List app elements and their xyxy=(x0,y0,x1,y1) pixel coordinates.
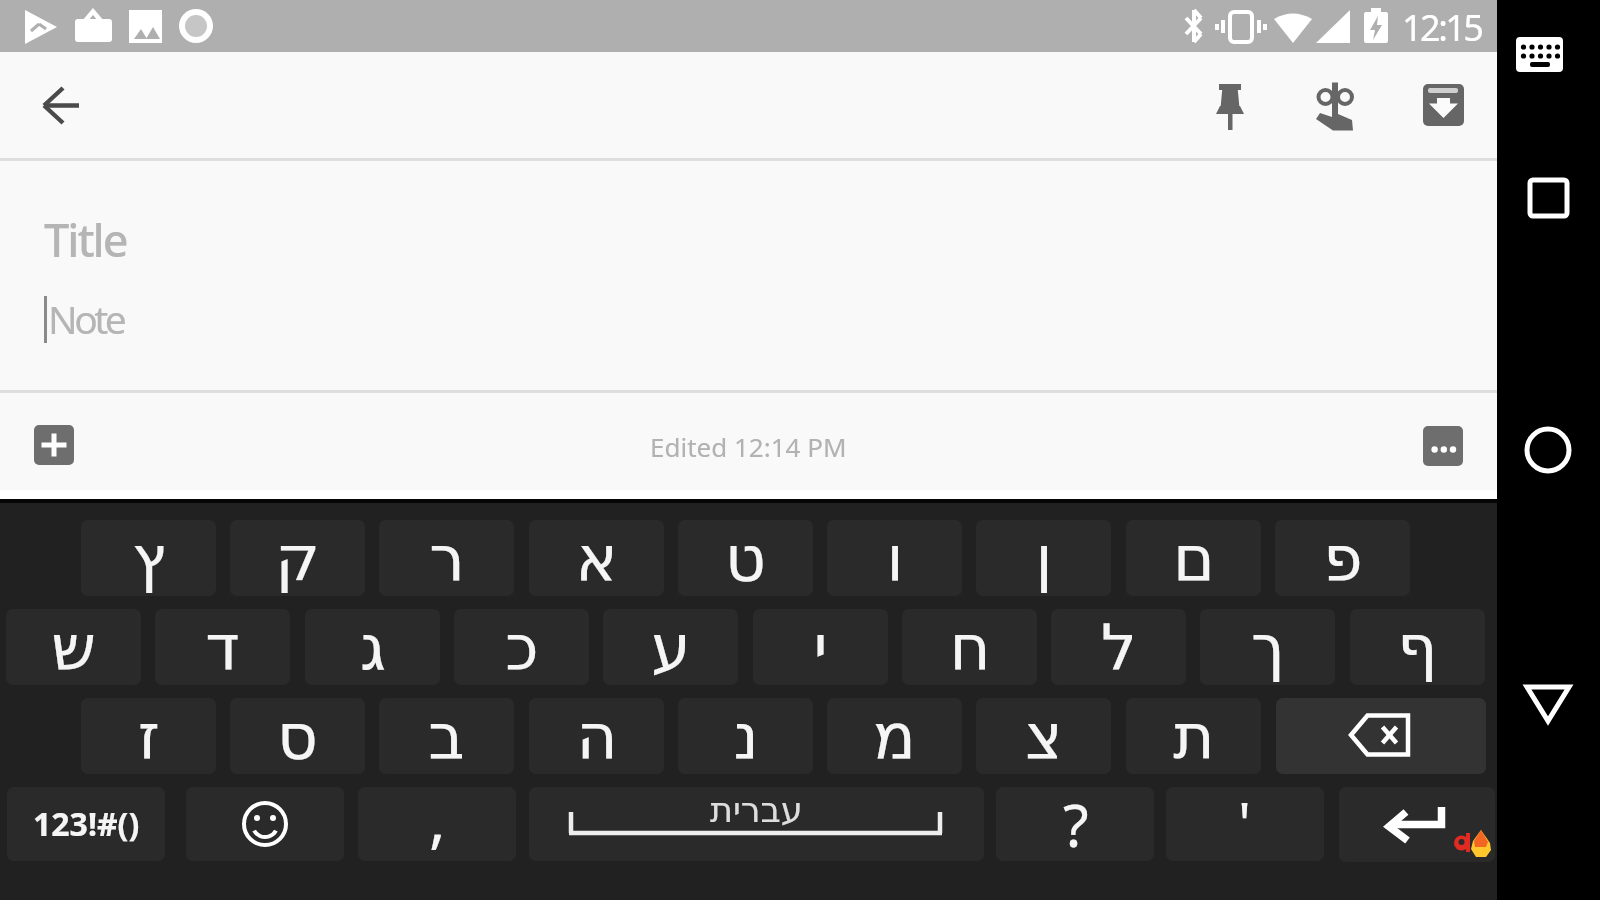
staticText: ? xyxy=(1063,787,1089,858)
button[interactable]: ו xyxy=(827,520,962,596)
staticText: נ xyxy=(733,700,759,773)
button[interactable]: Back xyxy=(1518,675,1578,735)
staticText: י xyxy=(813,611,828,684)
button[interactable]: א xyxy=(529,520,664,596)
button[interactable]: Apostrophe xyxy=(1166,787,1324,861)
button[interactable]: צ xyxy=(976,698,1111,774)
button[interactable]: ם xyxy=(1126,520,1261,596)
button[interactable]: ן xyxy=(976,520,1111,596)
staticText: א xyxy=(575,522,618,595)
button[interactable]: ח xyxy=(902,609,1037,685)
button[interactable]: Navigate up xyxy=(23,67,99,143)
staticText: ע xyxy=(651,611,691,684)
button[interactable]: ד xyxy=(155,609,290,685)
staticText: ך xyxy=(1251,611,1285,684)
staticText: פ xyxy=(1323,522,1363,595)
staticText: ג xyxy=(360,611,386,684)
staticText: , xyxy=(429,787,446,850)
button[interactable]: Handwriting input xyxy=(1299,70,1371,142)
button[interactable]: ש xyxy=(6,609,141,685)
button[interactable]: Comma xyxy=(358,787,516,861)
button[interactable]: ע xyxy=(603,609,738,685)
button[interactable]: ס xyxy=(230,698,365,774)
button[interactable]: ט xyxy=(678,520,813,596)
staticText: Title xyxy=(44,209,127,270)
button[interactable]: More options xyxy=(1423,426,1463,466)
staticText: 123!#() xyxy=(33,802,140,846)
button[interactable]: Emoji xyxy=(186,787,344,861)
staticText: 12:15 xyxy=(1402,3,1482,52)
staticText: ל xyxy=(1101,611,1137,684)
button[interactable]: פ xyxy=(1275,520,1410,596)
button[interactable]: ף xyxy=(1350,609,1485,685)
button[interactable]: Home xyxy=(1518,420,1578,480)
staticText: ר xyxy=(429,522,465,595)
staticText: ש xyxy=(51,611,96,684)
button[interactable]: Backspace xyxy=(1276,698,1486,774)
button[interactable]: Question mark xyxy=(996,787,1154,861)
staticText: כ xyxy=(505,611,539,684)
button[interactable]: מ xyxy=(827,698,962,774)
staticText: ס xyxy=(277,700,318,773)
staticText: ט xyxy=(725,522,766,595)
button[interactable]: ץ xyxy=(81,520,216,596)
button[interactable]: י xyxy=(753,609,888,685)
staticText: ן xyxy=(1035,522,1053,595)
button[interactable]: Archive xyxy=(1407,70,1479,142)
staticText: מ xyxy=(873,700,916,773)
button[interactable]: ג xyxy=(305,609,440,685)
button[interactable]: ל xyxy=(1051,609,1186,685)
button[interactable]: Symbols xyxy=(7,787,165,861)
button[interactable]: Enter xyxy=(1339,787,1495,862)
staticText: ץ xyxy=(132,522,166,595)
button[interactable]: ב xyxy=(379,698,514,774)
staticText: ז xyxy=(138,700,160,773)
button[interactable]: Pin note xyxy=(1195,70,1267,142)
staticText: ' xyxy=(1238,787,1252,857)
staticText: ק xyxy=(275,522,320,595)
staticText: ו xyxy=(886,522,904,595)
button[interactable]: ק xyxy=(230,520,365,596)
button[interactable]: ת xyxy=(1126,698,1261,774)
staticText: ה xyxy=(576,700,618,773)
button[interactable]: Recent apps xyxy=(1518,168,1578,228)
staticText: ד xyxy=(205,611,240,684)
button[interactable]: Add xyxy=(34,425,74,465)
staticText: ח xyxy=(949,611,991,684)
button[interactable]: כ xyxy=(454,609,589,685)
button[interactable]: ך xyxy=(1200,609,1335,685)
staticText: Edited 12:14 PM xyxy=(650,429,847,464)
staticText: צ xyxy=(1025,700,1063,773)
button[interactable]: Title xyxy=(0,197,1497,261)
button[interactable]: Note xyxy=(0,273,1497,390)
button[interactable]: ז xyxy=(81,698,216,774)
button[interactable]: Hide keyboard xyxy=(1504,24,1576,84)
staticText: ף xyxy=(1397,611,1438,684)
button[interactable]: נ xyxy=(678,698,813,774)
staticText: Note xyxy=(48,292,124,345)
staticText: ם xyxy=(1173,522,1215,595)
staticText: עברית xyxy=(710,790,803,831)
staticText: ב xyxy=(428,700,465,773)
button[interactable]: ה xyxy=(529,698,664,774)
button[interactable]: ר xyxy=(379,520,514,596)
button[interactable]: Space xyxy=(529,787,984,861)
staticText: ת xyxy=(1173,700,1215,773)
